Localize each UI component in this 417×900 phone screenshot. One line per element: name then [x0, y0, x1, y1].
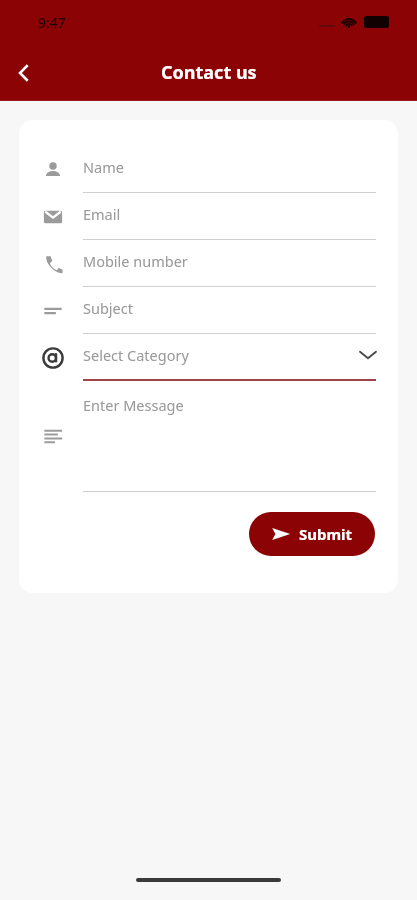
button[interactable]: Enter Message [19, 381, 398, 512]
staticText: Submit [299, 524, 353, 544]
staticText: Enter Message [83, 395, 184, 415]
button[interactable]: Submit [249, 512, 375, 556]
button[interactable]: Name [19, 146, 398, 193]
staticText: Mobile number [83, 251, 188, 271]
staticText: Subject [83, 298, 133, 318]
staticText: Email [83, 204, 121, 224]
button[interactable]: Select Category [19, 334, 398, 381]
staticText: 9:47 [38, 13, 66, 32]
button[interactable]: Email [19, 193, 398, 240]
button[interactable]: Subject [19, 287, 398, 334]
staticText: Contact us [161, 60, 257, 85]
button[interactable]: Back [2, 51, 46, 95]
staticText: Name [83, 157, 124, 177]
button[interactable]: Mobile number [19, 240, 398, 287]
staticText: Select Category [83, 345, 189, 365]
